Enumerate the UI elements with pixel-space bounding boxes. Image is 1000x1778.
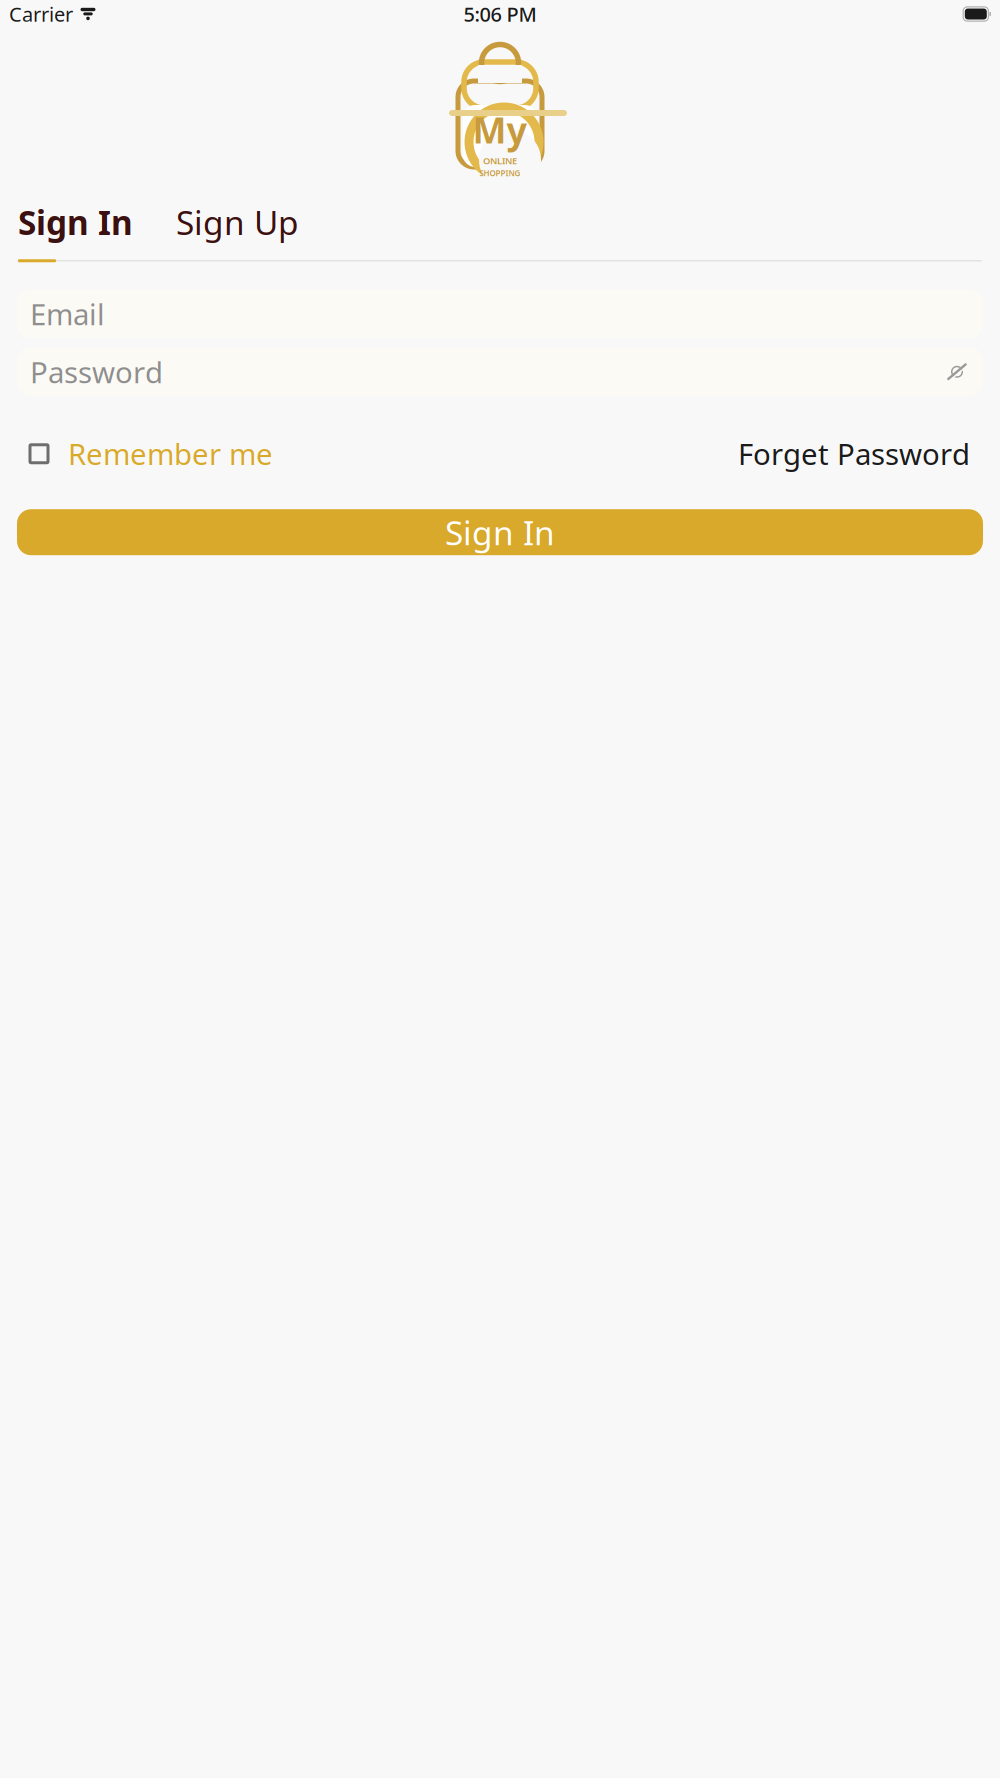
button[interactable]: Forget Password [738,430,970,477]
button[interactable]: Remember me [30,430,273,477]
staticText: My [472,106,527,153]
staticText: ONLINE [483,154,517,167]
staticText: Carrier [9,1,73,27]
staticText: Forget Password [738,434,970,473]
staticText: Sign In [18,200,133,244]
staticText: Remember me [68,434,273,473]
button[interactable]: Password [17,347,983,396]
staticText: 5:06 PM [463,1,536,27]
button[interactable]: Email [17,289,983,338]
staticText: Sign In [445,510,555,554]
staticText: SHOPPING [479,168,520,178]
staticText: Email [30,294,105,333]
staticText: Password [30,352,163,391]
button[interactable]: Sign In [17,509,983,555]
button[interactable]: Sign In [18,196,133,248]
staticText: Sign Up [176,200,299,244]
button[interactable]: Sign Up [176,196,299,248]
